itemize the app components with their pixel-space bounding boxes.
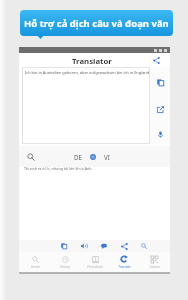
button[interactable]: VI: [103, 153, 111, 161]
button[interactable]: Search: [24, 150, 38, 164]
button[interactable]: Search web: [134, 240, 154, 252]
button[interactable]: Edit: [154, 103, 166, 115]
staticText: Tôi sinh ra ở Úc, nhưng tôi lớn lên ở An…: [24, 166, 93, 171]
button[interactable]: History: [51, 252, 79, 272]
button[interactable]: Hỗ trợ cả dịch câu và đoạn văn: [20, 10, 173, 36]
button[interactable]: Search: [21, 252, 49, 272]
button[interactable]: Feedback: [94, 240, 114, 252]
staticText: History: [60, 265, 70, 269]
staticText: Translator: [72, 56, 112, 67]
button[interactable]: Camera: [140, 252, 168, 272]
button[interactable]: Listen: [74, 240, 94, 252]
staticText: Translate: [118, 265, 131, 269]
button[interactable]: Translate: [110, 252, 138, 272]
button[interactable]: Share: [114, 240, 134, 252]
button[interactable]: Voice input: [154, 128, 166, 140]
staticText: Ich bin in Australien geboren, aber aufg…: [25, 70, 150, 75]
staticText: Search: [31, 265, 40, 269]
staticText: Camera: [149, 265, 160, 269]
button[interactable]: Swap languages: [88, 152, 98, 162]
button[interactable]: Phrasebook: [81, 252, 109, 272]
staticText: DE: [74, 153, 82, 161]
staticText: Phrasebook: [87, 265, 103, 269]
button[interactable]: Copy: [54, 240, 74, 252]
button[interactable]: Share: [151, 55, 162, 66]
button[interactable]: Copy text: [154, 76, 166, 88]
staticText: VI: [104, 153, 110, 161]
staticText: Hỗ trợ cả dịch câu và đoạn văn: [24, 17, 169, 30]
button[interactable]: DE: [73, 153, 83, 161]
